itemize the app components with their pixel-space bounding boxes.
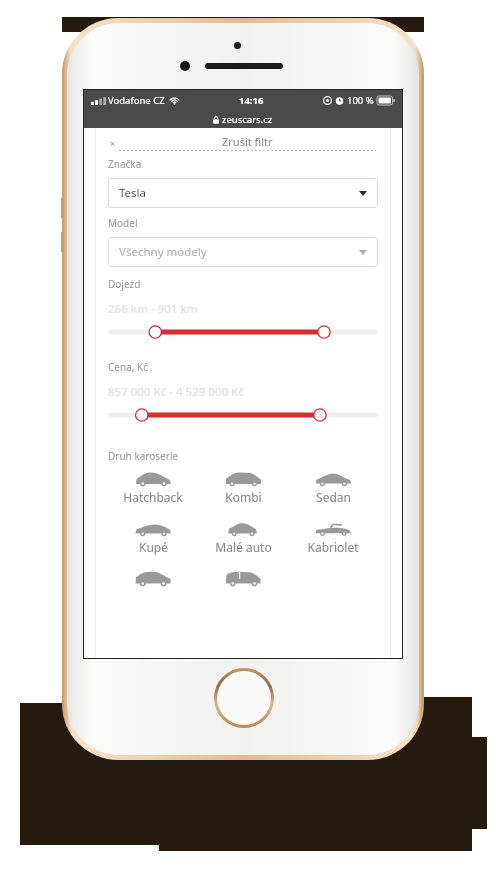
staticText: Tesla — [119, 185, 147, 201]
button[interactable]: Kombi — [198, 470, 288, 505]
staticText: 266 km - 901 km — [108, 301, 198, 317]
staticText: Sedan — [316, 489, 351, 505]
staticText: Všechny modely — [119, 244, 207, 260]
button[interactable]: Home — [214, 668, 274, 728]
staticText: Cena, Kč — [108, 360, 149, 374]
button[interactable]: Cena range — [108, 407, 378, 423]
staticText: Malé auto — [215, 539, 272, 555]
button[interactable]: zeuscars.cz — [84, 111, 402, 128]
staticText: Kupé — [139, 539, 168, 555]
staticText: Hatchback — [123, 489, 183, 505]
staticText: Druh karoserie — [108, 449, 179, 463]
staticText: × — [110, 137, 116, 149]
staticText: Model — [108, 216, 138, 230]
staticText: Kabriolet — [307, 539, 359, 555]
staticText: Dojezd — [108, 277, 141, 291]
staticText: 14:16 — [239, 94, 264, 107]
button[interactable]: Hatchback — [108, 470, 198, 505]
button[interactable]: × — [108, 132, 378, 154]
button[interactable]: Body type — [198, 570, 288, 587]
button[interactable]: Body type — [108, 570, 198, 587]
staticText: Kombi — [225, 489, 262, 505]
staticText: Vodafone CZ — [108, 94, 165, 107]
button[interactable]: Kupé — [108, 520, 198, 555]
button[interactable]: Sedan — [288, 470, 378, 505]
staticText: 857 000 Kč - 4 529 000 Kč — [108, 384, 244, 400]
staticText: zeuscars.cz — [222, 113, 273, 126]
button[interactable]: Dojezd range — [108, 324, 378, 340]
button[interactable]: Kabriolet — [288, 520, 378, 555]
staticText: Značka — [108, 157, 142, 171]
staticText: 100 % — [347, 94, 374, 107]
staticText: Zrušit filtr — [222, 134, 273, 149]
button[interactable]: Malé auto — [198, 520, 288, 555]
button[interactable]: Tesla — [108, 178, 378, 208]
button[interactable]: Všechny modely — [108, 237, 378, 267]
